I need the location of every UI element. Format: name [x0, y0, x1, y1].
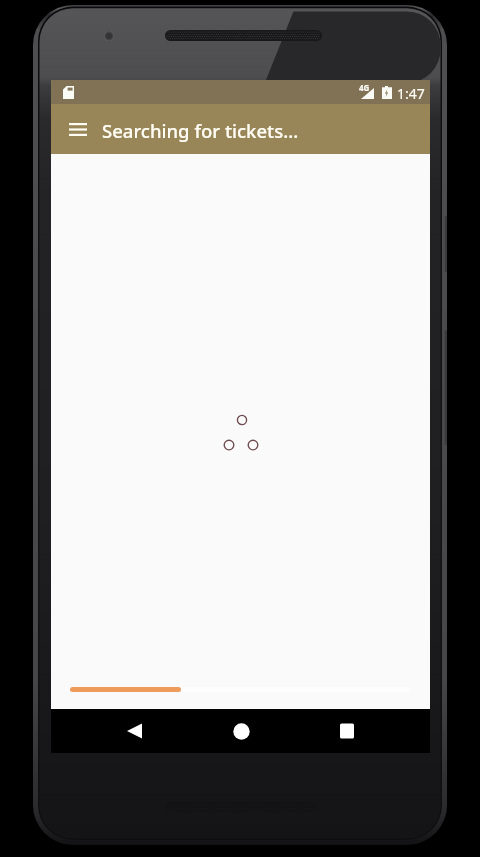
button[interactable]: Recent apps — [294, 709, 400, 753]
button[interactable]: Home — [188, 709, 294, 753]
staticText: Searching for tickets... — [102, 118, 299, 143]
staticText: 4G — [359, 82, 370, 93]
staticText: 1:47 — [397, 84, 425, 103]
button[interactable]: Back — [81, 709, 188, 753]
button[interactable]: Open navigation drawer — [54, 104, 101, 154]
